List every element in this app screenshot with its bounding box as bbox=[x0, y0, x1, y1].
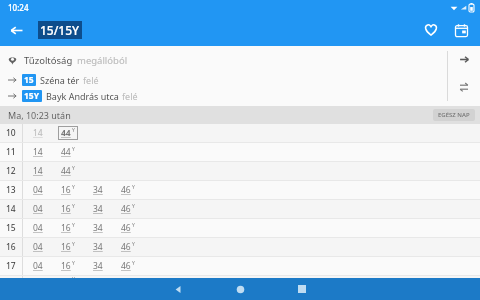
button[interactable]: Favorite bbox=[416, 15, 446, 45]
button[interactable]: 10 bbox=[0, 124, 480, 142]
staticText: 14 bbox=[33, 146, 43, 158]
staticText: 34 bbox=[93, 184, 103, 196]
staticText: 16 bbox=[61, 241, 71, 253]
staticText: 34 bbox=[93, 222, 103, 234]
staticText: 46 bbox=[121, 222, 131, 234]
staticText: 34 bbox=[93, 260, 103, 272]
button[interactable]: Home bbox=[209, 278, 271, 300]
staticText: Tűzoltóság bbox=[24, 54, 73, 67]
button[interactable]: 13 bbox=[0, 181, 480, 199]
staticText: 04 bbox=[33, 184, 43, 196]
staticText: 15 bbox=[24, 74, 34, 86]
staticText: 14 bbox=[33, 165, 43, 177]
staticText: 04 bbox=[33, 203, 43, 215]
staticText: 14 bbox=[33, 127, 43, 139]
staticText: 15Y bbox=[24, 90, 40, 102]
staticText: 10:24 bbox=[8, 2, 29, 13]
button[interactable]: Recent apps bbox=[271, 278, 333, 300]
staticText: 17 bbox=[6, 260, 16, 272]
button[interactable]: Swap direction bbox=[448, 76, 480, 98]
button[interactable]: Next stop bbox=[448, 46, 480, 72]
button[interactable]: 14 bbox=[0, 200, 480, 218]
staticText: Y bbox=[72, 241, 75, 248]
button[interactable]: Back bbox=[147, 278, 209, 300]
staticText: 15 bbox=[6, 222, 16, 234]
staticText: Y bbox=[72, 203, 75, 210]
staticText: 04 bbox=[33, 222, 43, 234]
button[interactable]: 15Y bbox=[0, 89, 447, 103]
staticText: 46 bbox=[121, 203, 131, 215]
staticText: Y bbox=[72, 127, 75, 134]
button[interactable]: 17 bbox=[0, 257, 480, 275]
staticText: Széna tér bbox=[40, 74, 80, 86]
staticText: 16 bbox=[61, 222, 71, 234]
staticText: 12 bbox=[6, 165, 16, 177]
staticText: Y bbox=[132, 184, 135, 191]
staticText: felé bbox=[122, 90, 138, 102]
button[interactable]: Calendar bbox=[446, 15, 476, 45]
button[interactable]: 15 bbox=[0, 219, 480, 237]
staticText: 46 bbox=[121, 241, 131, 253]
staticText: Y bbox=[72, 276, 75, 278]
staticText: 46 bbox=[121, 260, 131, 272]
staticText: 44 bbox=[61, 127, 71, 139]
button[interactable]: 11 bbox=[0, 143, 480, 161]
staticText: Y bbox=[132, 222, 135, 229]
staticText: 16 bbox=[6, 241, 16, 253]
staticText: 13 bbox=[6, 184, 16, 196]
button[interactable]: 12 bbox=[0, 162, 480, 180]
button[interactable]: Tűzoltóság bbox=[0, 52, 447, 68]
staticText: 44 bbox=[61, 146, 71, 158]
staticText: Y bbox=[72, 184, 75, 191]
staticText: EGÉSZ NAP bbox=[438, 111, 470, 119]
button[interactable]: EGÉSZ NAP bbox=[433, 109, 475, 121]
staticText: Y bbox=[132, 241, 135, 248]
staticText: 04 bbox=[33, 241, 43, 253]
staticText: 04 bbox=[33, 260, 43, 272]
staticText: 15/15Y bbox=[40, 22, 80, 38]
staticText: 11 bbox=[6, 146, 16, 158]
staticText: Ma, 10:23 után bbox=[8, 109, 71, 121]
button[interactable]: 15 bbox=[0, 73, 447, 87]
staticText: 16 bbox=[61, 260, 71, 272]
staticText: 14 bbox=[6, 203, 16, 215]
staticText: Y bbox=[72, 222, 75, 229]
staticText: 34 bbox=[93, 241, 103, 253]
staticText: 44 bbox=[61, 165, 71, 177]
staticText: felé bbox=[83, 74, 99, 86]
staticText: Y bbox=[132, 203, 135, 210]
button[interactable]: 16 bbox=[0, 238, 480, 256]
staticText: megállóból bbox=[77, 54, 128, 67]
staticText: Bayk András utca bbox=[46, 90, 119, 102]
staticText: Y bbox=[72, 260, 75, 267]
staticText: 46 bbox=[121, 184, 131, 196]
staticText: 16 bbox=[61, 203, 71, 215]
staticText: Y bbox=[72, 165, 75, 172]
staticText: 16 bbox=[61, 184, 71, 196]
staticText: 10 bbox=[6, 127, 16, 139]
staticText: 34 bbox=[93, 203, 103, 215]
staticText: Y bbox=[72, 146, 75, 153]
button[interactable]: Back bbox=[0, 14, 32, 46]
staticText: Y bbox=[132, 260, 135, 267]
